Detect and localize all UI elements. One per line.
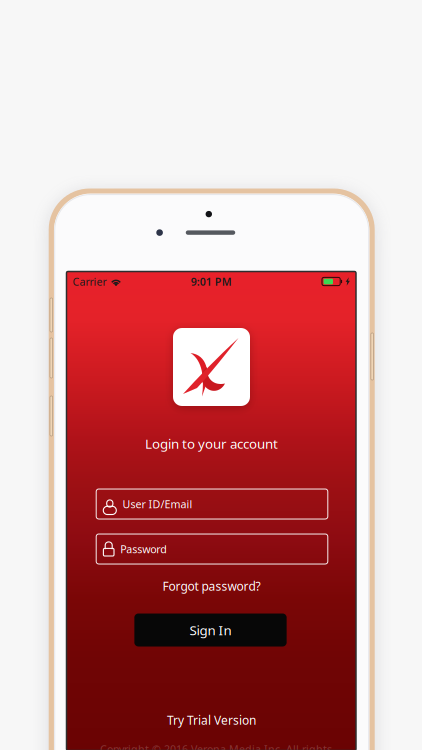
button[interactable]: Ring/Silent switch: [50, 298, 53, 332]
button[interactable]: Volume up: [50, 338, 53, 378]
staticText: User ID/Email: [122, 497, 192, 511]
staticText: Login to your account: [145, 435, 278, 452]
button[interactable]: Sleep/Wake: [371, 333, 373, 380]
staticText: Copyright © 2016 Verona Media Inc. All r…: [100, 742, 332, 750]
button[interactable]: User ID/Email: [96, 489, 328, 519]
staticText: Try Trial Version: [167, 712, 256, 728]
button[interactable]: Forgot password?: [156, 575, 266, 597]
staticText: Password: [120, 542, 167, 556]
button[interactable]: Password: [96, 534, 328, 564]
staticText: Forgot password?: [162, 578, 260, 594]
staticText: Sign In: [189, 621, 231, 639]
button[interactable]: Try Trial Version: [161, 709, 262, 731]
staticText: 9:01 PM: [191, 274, 232, 289]
button[interactable]: Sign In: [134, 613, 287, 646]
button[interactable]: Volume down: [50, 396, 53, 436]
staticText: Carrier: [72, 274, 106, 289]
